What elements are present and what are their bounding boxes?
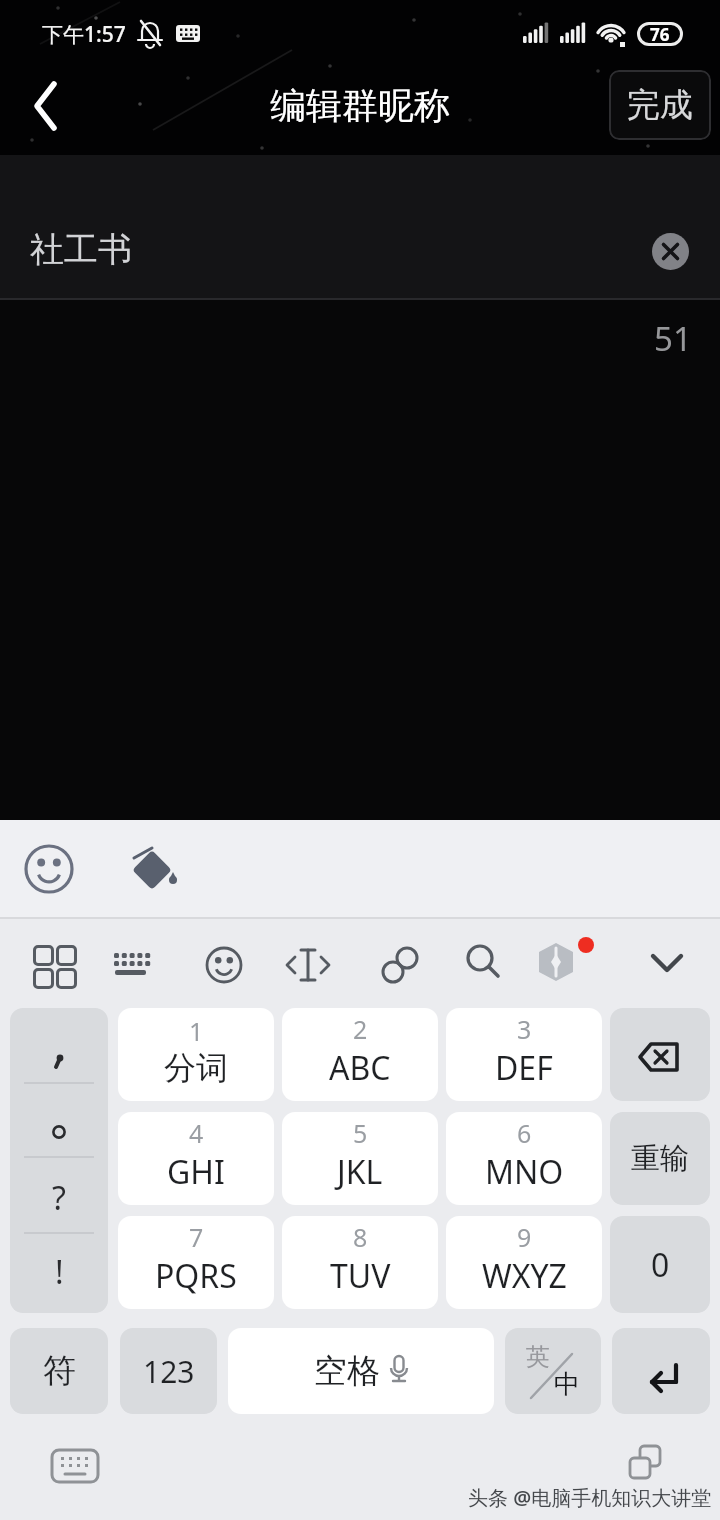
staticText: 9 [517,1220,532,1254]
staticText: 编辑群昵称 [270,83,450,128]
staticText: 中 [554,1368,580,1401]
staticText: 2 [353,1012,368,1046]
staticText: 4 [189,1116,204,1150]
staticText: TUV [330,1254,391,1298]
staticText: 3 [517,1012,532,1046]
staticText: 123 [143,1351,195,1392]
staticText: DEF [495,1046,553,1090]
staticText: JKL [337,1150,383,1194]
staticText: 1 [189,1014,204,1048]
staticText: GHI [167,1150,225,1194]
staticText: ! [55,1250,64,1292]
staticText: 5 [353,1116,368,1150]
staticText: 76 [650,23,670,46]
staticText: 空格 [314,1350,380,1392]
staticText: ABC [329,1046,391,1090]
staticText: 下午1:57 [42,20,126,49]
staticText: 分词 [164,1048,228,1088]
staticText: ? [52,1176,66,1218]
staticText: 完成 [627,84,693,126]
staticText: 51 [654,316,692,361]
staticText: 8 [353,1220,368,1254]
staticText: WXYZ [482,1254,567,1298]
staticText: 0 [651,1243,670,1287]
staticText: 符 [43,1350,76,1392]
staticText: PQRS [155,1254,237,1298]
staticText: 6 [517,1116,532,1150]
staticText: 7 [189,1220,204,1254]
staticText: 社工书 [30,228,132,271]
staticText: MNO [485,1150,564,1194]
staticText: 英 [526,1342,550,1372]
staticText: 重输 [631,1140,689,1177]
staticText: 头条 @电脑手机知识大讲堂 [468,1484,712,1511]
